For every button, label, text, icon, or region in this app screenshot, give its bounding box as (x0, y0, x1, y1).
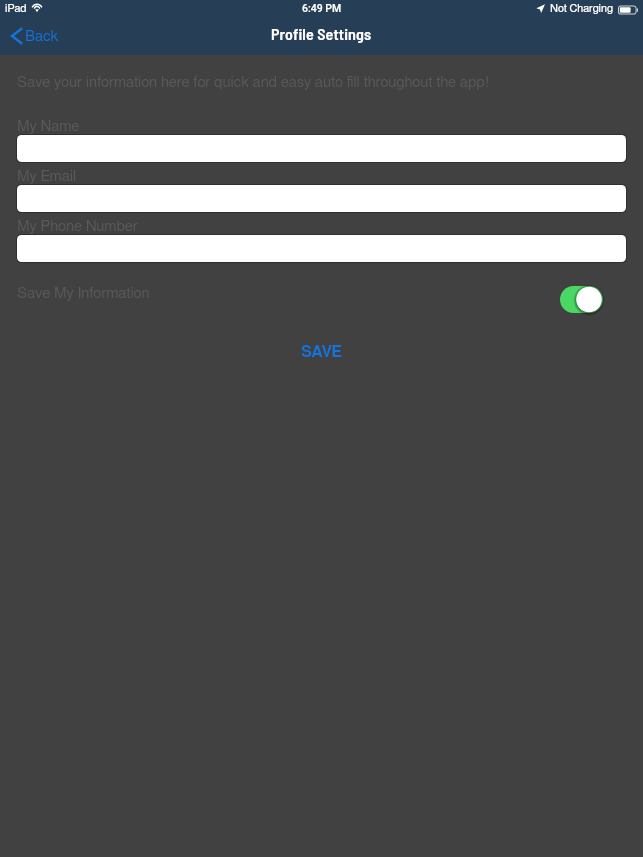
staticText: Not Charging (550, 3, 613, 14)
staticText: My Phone Number (17, 219, 138, 234)
button[interactable]: Save My Information (560, 286, 603, 313)
button[interactable]: SAVE (277, 338, 366, 366)
button[interactable]: Back (0, 23, 71, 49)
staticText: My Name (17, 119, 80, 134)
staticText: Save My Information (17, 286, 150, 301)
button[interactable] (16, 234, 627, 263)
staticText: iPad (5, 3, 27, 14)
staticText: Back (25, 29, 59, 44)
button[interactable] (16, 134, 627, 163)
staticText: My Email (17, 169, 77, 184)
staticText: SAVE (301, 344, 342, 360)
staticText: 6:49 PM (302, 2, 342, 14)
button[interactable] (16, 184, 627, 213)
staticText: Save your information here for quick and… (17, 75, 490, 90)
staticText: Profile Settings (271, 24, 372, 43)
